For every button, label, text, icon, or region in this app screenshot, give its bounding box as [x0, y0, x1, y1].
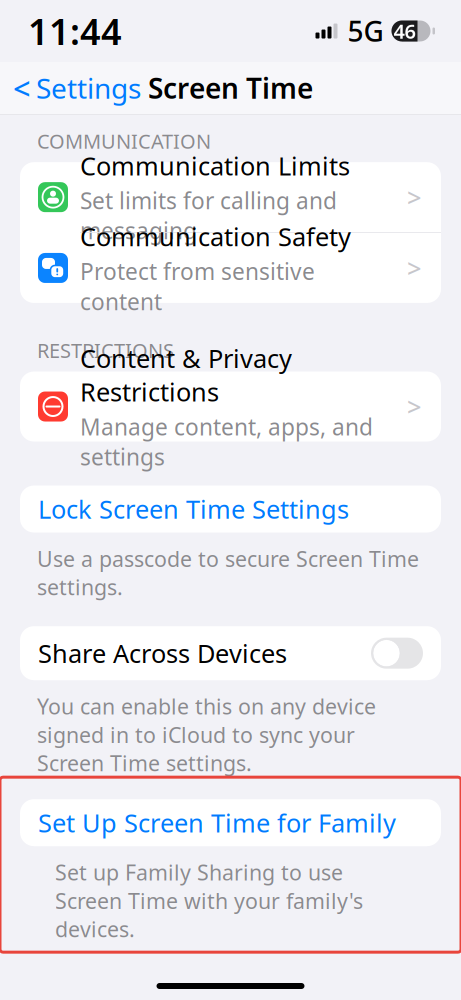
staticText: Communication Safety	[80, 219, 351, 253]
button[interactable]: Communication Safety	[20, 233, 441, 303]
staticText: 11:44	[28, 7, 122, 55]
staticText: COMMUNICATION	[37, 128, 211, 154]
staticText: Set Up Screen Time for Family	[38, 806, 396, 839]
staticText: Communication Limits	[80, 149, 350, 182]
button[interactable]: Turn Off App & Website Activity	[20, 978, 441, 1000]
staticText: Share Across Devices	[38, 636, 287, 670]
staticText: >	[407, 180, 421, 214]
staticText: >	[407, 390, 421, 423]
staticText: 5G	[347, 12, 383, 50]
staticText: Set limits for calling and messaging	[80, 185, 337, 246]
staticText: Turn Off App & Website Activity	[38, 985, 413, 1000]
staticText: <	[13, 68, 31, 108]
button[interactable]: <	[0, 59, 141, 117]
staticText: Set up Family Sharing to use Screen Time…	[55, 858, 363, 943]
staticText: >	[407, 251, 421, 285]
staticText: Use a passcode to secure Screen Time set…	[37, 544, 419, 601]
staticText: Screen Time	[148, 69, 313, 107]
staticText: RESTRICTIONS	[37, 337, 174, 364]
button[interactable]: Lock Screen Time Settings	[20, 485, 441, 532]
staticText: Protect from sensitive content	[80, 256, 315, 316]
staticText: Settings	[36, 69, 141, 107]
staticText: Lock Screen Time Settings	[38, 492, 349, 526]
button[interactable]: Share Across Devices	[20, 626, 441, 680]
button[interactable]: Content & Privacy Restrictions	[20, 371, 441, 441]
button[interactable]: Set Up Screen Time for Family	[20, 799, 441, 846]
staticText: Content & Privacy Restrictions	[80, 341, 292, 409]
button[interactable]: Communication Limits	[20, 162, 441, 232]
staticText: You can enable this on any device signed…	[37, 692, 376, 777]
staticText: 46	[393, 18, 415, 44]
staticText: Manage content, apps, and settings	[80, 412, 373, 472]
